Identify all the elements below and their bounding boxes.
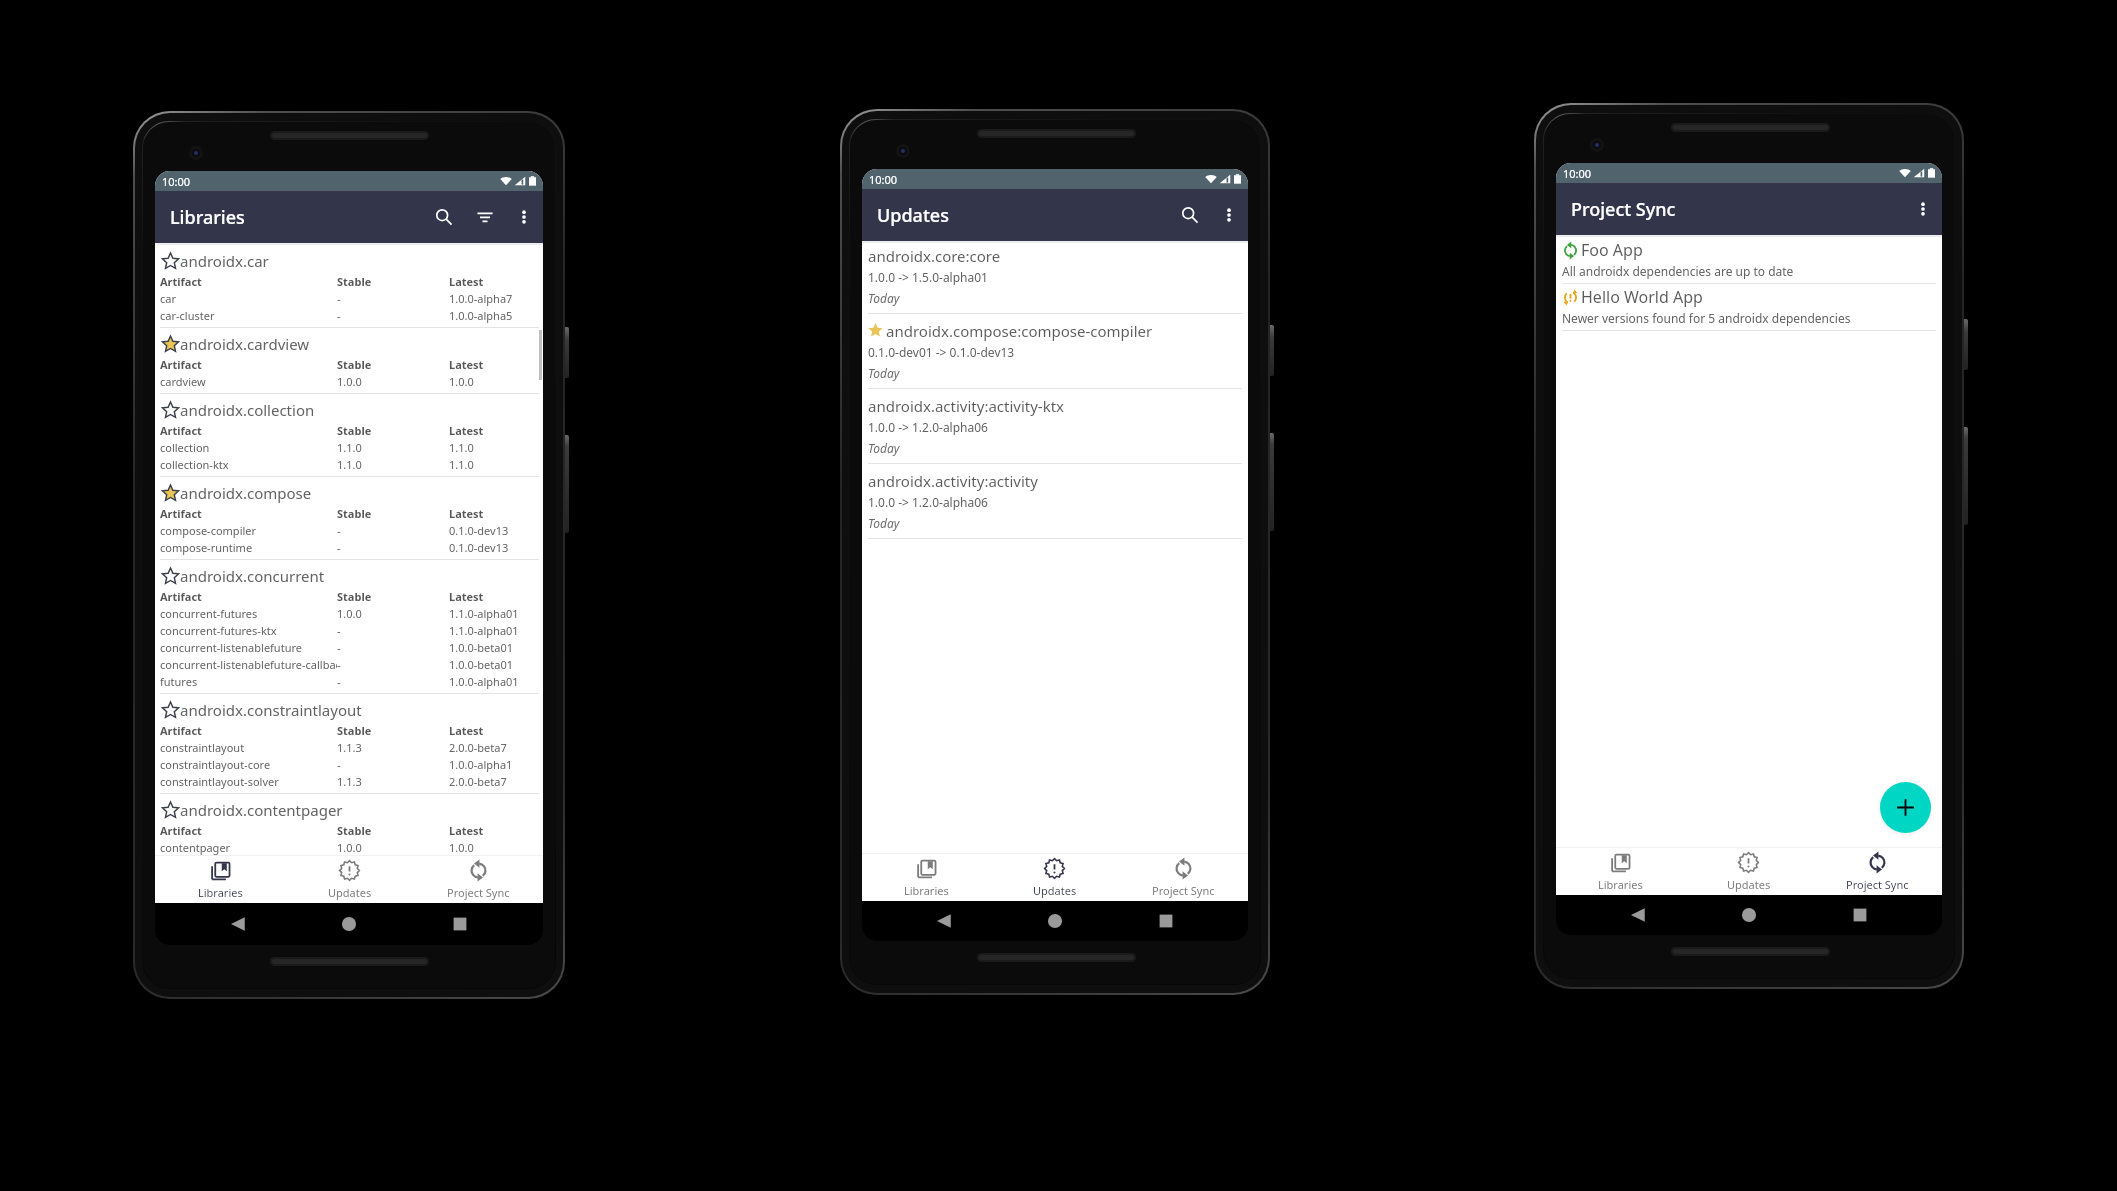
button[interactable]: androidx.cardview [155,328,543,394]
staticText: 1.0.0 [449,374,474,389]
staticText: 2.0.0-beta7 [449,740,507,755]
staticText: - [337,623,449,638]
staticText: concurrent-listenablefuture-callback [160,657,337,672]
button[interactable]: androidx.collection [155,394,543,477]
button[interactable]: androidx.car [155,245,543,328]
staticText: androidx.concurrent [180,566,325,586]
staticText: androidx.cardview [180,334,310,354]
button[interactable]: Project Sync [414,856,543,903]
button[interactable]: androidx.compose:compose-compiler [862,314,1248,389]
staticText: 1.1.0-alpha01 [449,623,519,638]
button[interactable]: Back [223,909,253,939]
staticText: Project Sync [1846,877,1909,892]
staticText: - [337,757,449,772]
staticText: Updates [328,885,372,900]
staticText: concurrent-listenablefuture [160,640,337,655]
staticText: 10:00 [869,172,898,187]
staticText: 1.1.0 [449,440,474,455]
staticText: Artifact [160,274,337,289]
staticText: androidx.collection [180,400,315,420]
staticText: compose-runtime [160,540,337,555]
button[interactable]: More options [509,202,539,232]
button[interactable]: androidx.constraintlayout [155,694,543,794]
staticText: 1.0.0 -> 1.5.0-alpha01 [868,269,988,285]
button[interactable]: Libraries [862,854,990,901]
button[interactable]: Home [1734,900,1764,930]
staticText: constraintlayout [160,740,337,755]
button[interactable]: Back [1623,900,1653,930]
staticText: 1.0.0-alpha7 [449,291,513,306]
button[interactable]: Search [427,200,461,234]
staticText: 0.1.0-dev13 [449,540,509,555]
button[interactable]: androidx.contentpager [155,794,543,855]
staticText: Project Sync [1152,883,1215,898]
button[interactable]: Recent apps [1151,906,1181,936]
staticText: androidx.constraintlayout [180,700,362,720]
staticText: - [337,674,449,689]
staticText: collection-ktx [160,457,337,472]
staticText: Hello World App [1581,286,1703,308]
staticText: Newer versions found for 5 androidx depe… [1562,310,1851,326]
staticText: Libraries [198,885,243,900]
button[interactable]: Home [1040,906,1070,936]
button[interactable]: Filter [468,200,502,234]
button[interactable]: Hello World App [1556,284,1942,331]
staticText: Stable [337,423,449,438]
button[interactable]: androidx.core:core [862,239,1248,314]
staticText: Today [868,440,900,456]
staticText: 1.0.0-beta01 [449,657,514,672]
staticText: androidx.compose:compose-compiler [886,321,1153,341]
staticText: 1.0.0-beta01 [449,640,514,655]
staticText: Artifact [160,423,337,438]
staticText: Stable [337,823,449,838]
staticText: Updates [1033,883,1077,898]
staticText: concurrent-futures [160,606,337,621]
staticText: contentpager [160,840,337,855]
staticText: androidx.core:core [868,246,1001,266]
staticText: concurrent-futures-ktx [160,623,337,638]
button[interactable]: Home [334,909,364,939]
staticText: All androidx dependencies are up to date [1562,263,1794,279]
button[interactable]: Foo App [1556,237,1942,284]
staticText: car-cluster [160,308,337,323]
button[interactable]: Add project [1880,782,1931,833]
staticText: Stable [337,357,449,372]
staticText: - [337,640,449,655]
button[interactable]: Project Sync [1119,854,1248,901]
staticText: Latest [449,274,484,289]
staticText: 1.1.0 [337,440,449,455]
staticText: - [337,657,449,672]
button[interactable]: More options [1214,200,1244,230]
staticText: - [337,308,449,323]
button[interactable]: androidx.concurrent [155,560,543,694]
staticText: 1.0.0-alpha1 [449,757,513,772]
button[interactable]: Updates [285,856,414,903]
staticText: - [337,291,449,306]
button[interactable]: Recent apps [445,909,475,939]
staticText: compose-compiler [160,523,337,538]
button[interactable]: Back [929,906,959,936]
staticText: 1.0.0-alpha01 [449,674,519,689]
button[interactable]: Libraries [155,856,285,903]
staticText: Latest [449,423,484,438]
button[interactable]: Updates [990,854,1119,901]
staticText: Latest [449,589,484,604]
button[interactable]: Updates [1684,848,1813,895]
button[interactable]: More options [1908,194,1938,224]
staticText: cardview [160,374,337,389]
button[interactable]: androidx.compose [155,477,543,560]
button[interactable]: Project Sync [1813,848,1942,895]
button[interactable]: Search [1173,198,1207,232]
button[interactable]: androidx.activity:activity-ktx [862,389,1248,464]
button[interactable]: androidx.activity:activity [862,464,1248,539]
staticText: 1.0.0-alpha5 [449,308,513,323]
staticText: 1.0.0 [337,840,449,855]
staticText: 1.1.0 [449,457,474,472]
button[interactable]: Libraries [1556,848,1684,895]
staticText: Libraries [1598,877,1643,892]
staticText: Artifact [160,357,337,372]
staticText: Artifact [160,589,337,604]
button[interactable]: Recent apps [1845,900,1875,930]
staticText: 1.0.0 [337,606,449,621]
staticText: 1.0.0 -> 1.2.0-alpha06 [868,419,988,435]
